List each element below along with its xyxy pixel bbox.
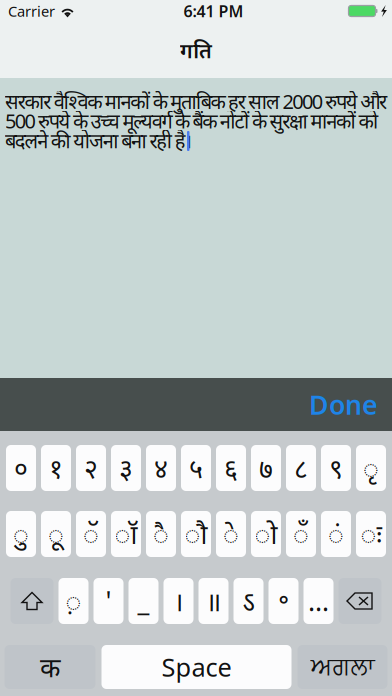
button[interactable]: ६: [216, 445, 246, 491]
button[interactable]: ऽ: [233, 578, 263, 624]
button[interactable]: _: [128, 578, 158, 624]
button[interactable]: १: [41, 445, 71, 491]
button[interactable]: ।: [163, 578, 193, 624]
staticText: 6:41 PM: [183, 0, 243, 22]
button[interactable]: ु: [6, 511, 36, 557]
staticText: ८: [294, 450, 308, 486]
staticText: ं: [328, 516, 344, 552]
button[interactable]: ८: [286, 445, 316, 491]
staticText: ़: [65, 583, 81, 619]
staticText: क: [40, 649, 60, 685]
button[interactable]: ँ: [286, 511, 316, 557]
staticText: ौ: [184, 516, 207, 552]
button[interactable]: ं: [321, 511, 351, 557]
staticText: _: [137, 583, 149, 619]
button[interactable]: ४: [146, 445, 176, 491]
button[interactable]: ृ: [356, 445, 386, 491]
button[interactable]: ': [93, 578, 123, 624]
staticText: ै: [153, 516, 169, 552]
staticText: ू: [48, 516, 64, 552]
button[interactable]: क: [4, 645, 95, 689]
staticText: े: [223, 516, 239, 552]
staticText: ँ: [293, 516, 309, 552]
staticText: गति: [180, 36, 212, 64]
button[interactable]: ९: [321, 445, 351, 491]
staticText: …: [308, 583, 329, 619]
staticText: ऽ: [242, 583, 254, 619]
staticText: ६: [224, 450, 238, 486]
staticText: २: [84, 450, 98, 486]
staticText: ु: [13, 516, 29, 552]
button[interactable]: ौ: [181, 511, 211, 557]
button[interactable]: ३: [111, 445, 141, 491]
staticText: ५: [189, 450, 203, 486]
staticText: ॅ: [83, 516, 99, 552]
button[interactable]: े: [216, 511, 246, 557]
button[interactable]: ै: [146, 511, 176, 557]
staticText: १: [49, 450, 63, 486]
staticText: ९: [329, 450, 343, 486]
staticText: ॰: [278, 583, 289, 619]
staticText: ॥: [205, 583, 221, 619]
staticText: सरकार वैश्विक मानकों के मुताबिक हर साल 2…: [5, 88, 387, 154]
staticText: ७: [259, 450, 273, 486]
staticText: ': [105, 583, 111, 619]
staticText: ृ: [363, 450, 379, 486]
staticText: ३: [119, 450, 133, 486]
button[interactable]: Shift: [10, 578, 53, 624]
staticText: Carrier: [8, 1, 55, 21]
staticText: ।: [173, 583, 183, 619]
button[interactable]: २: [76, 445, 106, 491]
staticText: Space: [161, 650, 231, 684]
button[interactable]: ः: [356, 511, 386, 557]
button[interactable]: ़: [58, 578, 88, 624]
staticText: ਅਗਲਾ: [310, 655, 374, 679]
button[interactable]: …: [303, 578, 333, 624]
button[interactable]: ७: [251, 445, 281, 491]
staticText: ॉ: [114, 516, 137, 552]
button[interactable]: ॅ: [76, 511, 106, 557]
button[interactable]: Delete: [338, 578, 381, 624]
button[interactable]: Space: [101, 645, 291, 689]
button[interactable]: ॰: [268, 578, 298, 624]
button[interactable]: ਅਗਲਾ: [297, 645, 387, 689]
button[interactable]: ॉ: [111, 511, 141, 557]
button[interactable]: Done: [295, 378, 392, 431]
button[interactable]: ॥: [198, 578, 228, 624]
staticText: ०: [14, 450, 28, 486]
staticText: Done: [309, 387, 378, 422]
button[interactable]: ५: [181, 445, 211, 491]
staticText: ो: [254, 516, 277, 552]
button[interactable]: ०: [6, 445, 36, 491]
button[interactable]: ू: [41, 511, 71, 557]
staticText: ४: [154, 450, 168, 486]
staticText: ः: [360, 516, 381, 552]
button[interactable]: ो: [251, 511, 281, 557]
